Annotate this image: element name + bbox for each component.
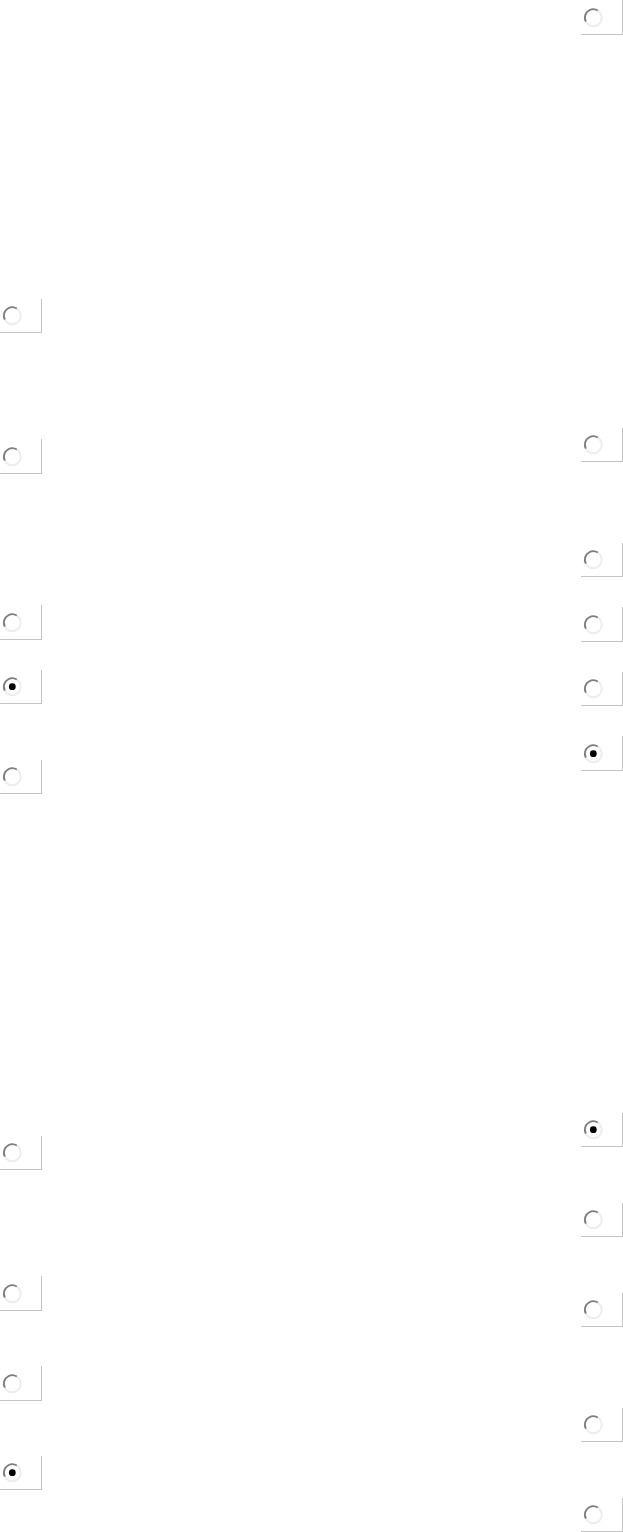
button[interactable]: Select option 14 (0, 605, 42, 640)
button[interactable]: Select option 2 (581, 428, 623, 462)
button[interactable]: Select option 15 (0, 670, 42, 704)
button[interactable]: Select option 13 (0, 439, 42, 474)
button[interactable]: Select option 6 (581, 736, 623, 771)
button[interactable]: Select option 20 (0, 1456, 42, 1490)
button[interactable]: Select option 3 (581, 543, 623, 577)
button[interactable]: Select option 17 (0, 1136, 42, 1170)
button[interactable]: Select option 7 (581, 1113, 623, 1147)
button[interactable]: Select option 8 (581, 1203, 623, 1237)
button[interactable]: Select option 19 (0, 1366, 42, 1401)
button[interactable]: Select option 16 (0, 760, 42, 794)
button[interactable]: Select option 4 (581, 607, 623, 642)
button[interactable]: Select option 11 (581, 1498, 623, 1532)
button[interactable]: Select option 9 (581, 1293, 623, 1327)
button[interactable]: Select option 18 (0, 1276, 42, 1311)
button[interactable]: Select option 10 (581, 1408, 623, 1442)
button[interactable]: Select option 1 (581, 0, 623, 35)
button[interactable]: Select option 12 (0, 299, 42, 333)
button[interactable]: Select option 5 (581, 672, 623, 706)
